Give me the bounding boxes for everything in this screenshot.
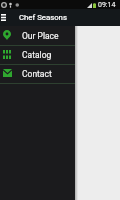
staticText: Our Place	[22, 31, 59, 41]
button[interactable]: Catalog	[0, 46, 75, 64]
staticText: 09:14	[98, 1, 116, 9]
staticText: Contact	[22, 69, 52, 79]
staticText: Chef Seasons	[19, 13, 67, 22]
staticText: Catalog	[22, 50, 52, 60]
button[interactable]: Open navigation drawer	[0, 9, 17, 26]
button[interactable]: Our Place	[0, 27, 75, 45]
button[interactable]: Contact	[0, 65, 75, 83]
